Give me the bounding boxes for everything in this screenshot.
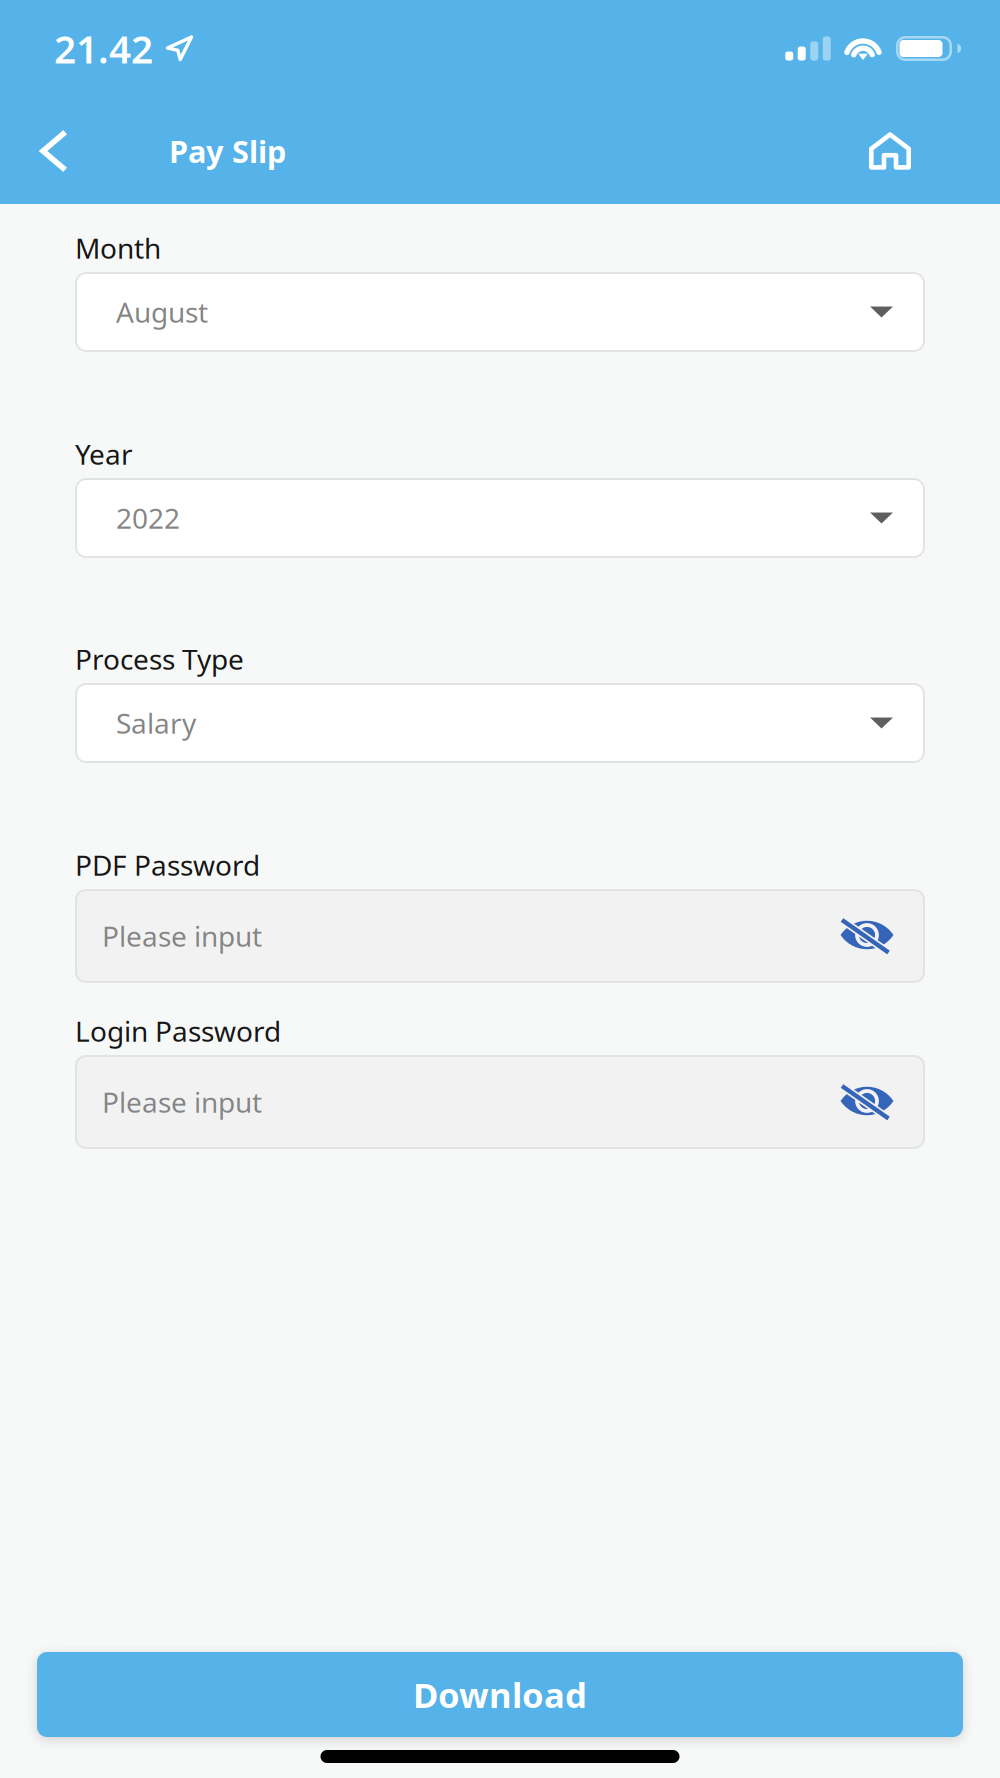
- staticText: Process Type: [75, 640, 244, 678]
- button[interactable]: 2022: [75, 478, 925, 558]
- staticText: Please input: [102, 1083, 262, 1121]
- staticText: Year: [75, 435, 133, 473]
- button[interactable]: Home: [844, 96, 936, 206]
- staticText: Login Password: [75, 1012, 281, 1050]
- button[interactable]: August: [75, 272, 925, 352]
- staticText: Month: [75, 229, 161, 267]
- staticText: Please input: [102, 917, 262, 955]
- staticText: August: [116, 293, 208, 331]
- button[interactable]: Salary: [75, 683, 925, 763]
- button[interactable]: Back: [13, 96, 93, 206]
- staticText: Pay Slip: [169, 131, 286, 171]
- staticText: 2022: [116, 499, 180, 537]
- button[interactable]: Show password: [828, 1054, 906, 1150]
- staticText: PDF Password: [75, 846, 260, 884]
- staticText: Salary: [116, 704, 196, 742]
- button[interactable]: Show password: [828, 888, 906, 984]
- staticText: Download: [413, 1671, 587, 1717]
- button[interactable]: Download: [37, 1652, 963, 1737]
- staticText: 21.42: [54, 23, 153, 74]
